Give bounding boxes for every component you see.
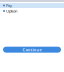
button[interactable]: Continue (3, 47, 61, 53)
staticText: Pay (6, 3, 12, 8)
staticText: Option (6, 8, 17, 14)
staticText: Continue (22, 47, 41, 52)
